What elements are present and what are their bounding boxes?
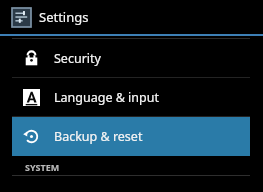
staticText: Settings xyxy=(39,8,89,26)
button[interactable]: Security xyxy=(12,39,250,77)
staticText: Language & input xyxy=(54,89,159,106)
button[interactable]: Language and input xyxy=(12,78,250,116)
button[interactable]: Backup and reset xyxy=(12,117,250,156)
staticText: Backup & reset xyxy=(54,128,143,145)
button[interactable]: Settings xyxy=(0,0,263,34)
staticText: Security xyxy=(54,50,101,67)
staticText: SYSTEM xyxy=(25,161,60,173)
